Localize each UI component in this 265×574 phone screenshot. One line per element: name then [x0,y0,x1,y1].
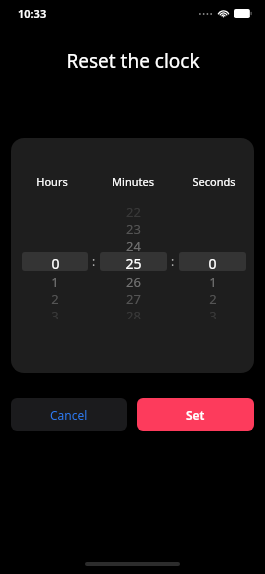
button[interactable]: Set [137,398,254,431]
staticText: 3 [51,307,59,319]
staticText: 0 [51,254,60,273]
staticText: 2 [51,290,59,307]
staticText: 23 [126,220,141,237]
staticText: 0 [208,254,217,273]
staticText: 24 [126,237,141,254]
staticText: Seconds [192,174,236,189]
button[interactable]: 0 [179,203,246,319]
staticText: 25 [125,254,142,273]
staticText: 3 [209,307,217,319]
staticText: : [92,253,96,269]
staticText: 2 [209,290,217,307]
staticText: Cancel [50,407,88,423]
button[interactable]: 0 [22,203,88,319]
staticText: 22 [126,203,141,220]
staticText: 10:33 [18,6,47,21]
staticText: Minutes [112,174,154,189]
staticText: Reset the clock [66,48,200,74]
staticText: Hours [36,174,68,189]
button[interactable]: 22 [100,203,167,319]
staticText: Set [186,407,205,423]
staticText: 1 [51,273,59,290]
staticText: 1 [209,273,217,290]
staticText: 26 [126,273,141,290]
button[interactable]: Cancel [11,398,127,431]
staticText: : [171,253,175,269]
staticText: 27 [126,290,141,307]
staticText: 28 [126,307,141,319]
